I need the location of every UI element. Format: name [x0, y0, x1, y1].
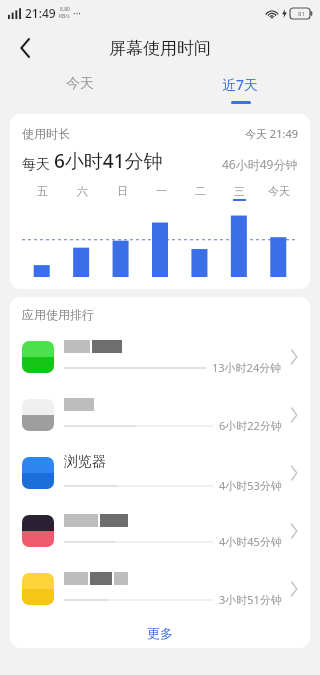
- staticText: 浏览器: [64, 453, 106, 471]
- button[interactable]: 6小时22分钟: [10, 386, 310, 444]
- staticText: 屏幕使用时间: [109, 38, 211, 59]
- staticText: 4小时53分钟: [219, 478, 282, 493]
- staticText: 6小时41分钟: [54, 148, 163, 174]
- staticText: 今天: [66, 75, 94, 93]
- staticText: 3小时51分钟: [219, 592, 282, 607]
- staticText: 81: [298, 10, 305, 18]
- staticText: 13小时24分钟: [212, 360, 282, 375]
- button[interactable]: 13小时24分钟: [10, 328, 310, 386]
- staticText: 更多: [147, 625, 173, 641]
- staticText: 一: [156, 184, 167, 198]
- staticText: 二: [195, 184, 206, 198]
- staticText: 4小时45分钟: [219, 534, 282, 549]
- staticText: 今天: [268, 184, 290, 198]
- button[interactable]: 今天: [0, 70, 160, 108]
- staticText: 日: [117, 184, 128, 198]
- staticText: 应用使用排行: [22, 307, 94, 322]
- staticText: 六: [77, 184, 88, 198]
- button[interactable]: 3小时51分钟: [10, 560, 310, 618]
- button[interactable]: 浏览器: [10, 444, 310, 502]
- button[interactable]: 返回: [6, 29, 44, 67]
- staticText: KB/s: [59, 13, 70, 20]
- button[interactable]: 4小时45分钟: [10, 502, 310, 560]
- staticText: 三: [234, 184, 245, 198]
- staticText: 46小时49分钟: [222, 156, 298, 172]
- button[interactable]: 更多: [10, 618, 310, 648]
- staticText: 每天: [22, 156, 50, 174]
- staticText: 8.80: [60, 6, 70, 13]
- staticText: 21:49: [25, 5, 56, 21]
- staticText: 使用时长: [22, 126, 70, 141]
- staticText: 近7天: [222, 75, 259, 94]
- staticText: 五: [37, 184, 48, 198]
- staticText: 6小时22分钟: [219, 418, 282, 433]
- staticText: ···: [73, 6, 82, 20]
- staticText: 今天 21:49: [245, 126, 298, 141]
- button[interactable]: 近7天: [160, 70, 320, 108]
